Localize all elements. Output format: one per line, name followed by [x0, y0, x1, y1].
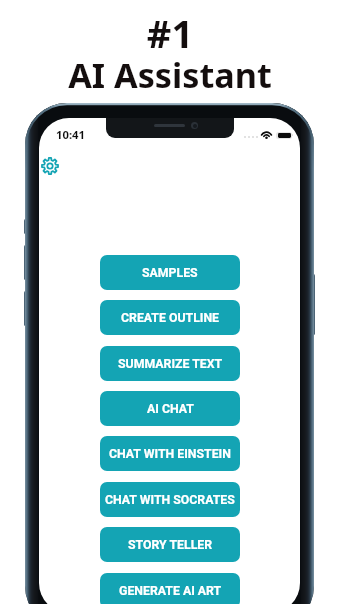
button[interactable]: STORY TELLER: [100, 527, 240, 562]
staticText: AI CHAT: [147, 402, 194, 416]
button[interactable]: CHAT WITH EINSTEIN: [100, 436, 240, 471]
button[interactable]: GENERATE AI ART: [100, 573, 240, 604]
button[interactable]: CHAT WITH SOCRATES: [100, 482, 240, 517]
staticText: GENERATE AI ART: [119, 584, 222, 598]
button[interactable]: CREATE OUTLINE: [100, 300, 240, 335]
staticText: AI Assistant: [0, 51, 340, 98]
button[interactable]: SAMPLES: [100, 255, 240, 290]
staticText: SUMMARIZE TEXT: [118, 357, 223, 371]
staticText: #1: [0, 7, 340, 59]
button[interactable]: SUMMARIZE TEXT: [100, 346, 240, 381]
button[interactable]: Settings: [39, 154, 62, 178]
staticText: STORY TELLER: [128, 538, 213, 552]
staticText: CHAT WITH EINSTEIN: [109, 447, 231, 461]
button[interactable]: AI CHAT: [100, 391, 240, 426]
staticText: CHAT WITH SOCRATES: [105, 493, 235, 507]
staticText: SAMPLES: [142, 266, 198, 280]
staticText: CREATE OUTLINE: [121, 311, 220, 325]
staticText: 10:41: [56, 127, 86, 142]
